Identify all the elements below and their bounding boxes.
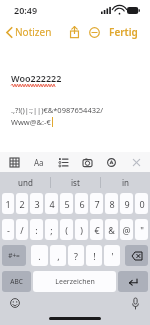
staticText: 3 — [34, 198, 40, 210]
staticText: ) — [80, 224, 83, 236]
button[interactable]: - — [2, 219, 14, 240]
button[interactable]: #+= — [2, 245, 26, 266]
staticText: und — [18, 177, 33, 188]
button[interactable]: 7 — [90, 193, 103, 214]
staticText: 0 — [139, 198, 145, 210]
button[interactable]: ( — [60, 219, 73, 240]
button[interactable]: Notizen — [0, 22, 58, 42]
staticText: / — [20, 224, 24, 236]
button[interactable]: " — [135, 219, 148, 240]
button[interactable]: Teilen — [64, 22, 84, 42]
button[interactable]: Markieren — [101, 152, 121, 172]
button[interactable]: Kamera — [77, 152, 97, 172]
button[interactable]: . — [31, 245, 48, 266]
staticText: in — [122, 177, 130, 188]
staticText: : — [35, 224, 38, 236]
button[interactable]: & — [105, 219, 118, 240]
button[interactable]: Woo222222 — [0, 44, 150, 152]
staticText: Aa — [34, 157, 44, 168]
button[interactable]: 0 — [135, 193, 148, 214]
button[interactable]: ist — [51, 172, 100, 193]
staticText: Fertig — [109, 25, 138, 39]
button[interactable]: 5 — [60, 193, 73, 214]
button[interactable]: , — [50, 245, 66, 266]
button[interactable]: Tabelle — [4, 152, 24, 172]
staticText: 5 — [64, 198, 70, 210]
button[interactable]: Schließen — [126, 152, 146, 172]
button[interactable]: Format — [29, 152, 49, 172]
staticText: € — [94, 224, 100, 236]
button[interactable]: @ — [120, 219, 133, 240]
button[interactable]: : — [30, 219, 43, 240]
button[interactable]: € — [90, 219, 103, 240]
staticText: .,?!()|:;||)€&*0987654432/ — [11, 105, 104, 115]
staticText: & — [108, 224, 115, 236]
staticText: ist — [71, 177, 80, 188]
button[interactable]: ! — [86, 245, 102, 266]
button[interactable]: 2 — [16, 193, 28, 214]
staticText: Notizen — [15, 25, 52, 39]
button[interactable]: Liste — [53, 152, 73, 172]
staticText: 9 — [124, 198, 130, 210]
button[interactable]: Diktieren — [127, 295, 143, 311]
staticText: 1 — [5, 198, 11, 210]
button[interactable]: in — [101, 172, 150, 193]
staticText: Woo222222 — [11, 72, 62, 84]
staticText: 2 — [19, 198, 25, 210]
staticText: ABC — [10, 277, 23, 286]
button[interactable]: Eingabe — [118, 271, 148, 292]
button[interactable]: Mehr — [84, 22, 104, 42]
staticText: 6 — [79, 198, 85, 210]
staticText: ( — [65, 224, 68, 236]
button[interactable]: 9 — [120, 193, 133, 214]
staticText: ! — [93, 250, 96, 262]
button[interactable]: ) — [75, 219, 88, 240]
button[interactable]: 8 — [105, 193, 118, 214]
button[interactable]: Leerzeichen — [33, 271, 116, 292]
staticText: Www@&:-€ — [11, 117, 51, 127]
button[interactable]: ABC — [2, 271, 31, 292]
staticText: @ — [122, 224, 131, 236]
button[interactable]: Emoji — [7, 295, 23, 311]
staticText: " — [140, 224, 144, 236]
staticText: - — [7, 224, 10, 236]
button[interactable]: Fertig — [104, 22, 143, 42]
staticText: 7 — [94, 198, 100, 210]
button[interactable]: 4 — [45, 193, 58, 214]
button[interactable]: / — [16, 219, 28, 240]
staticText: Leerzeichen — [55, 277, 95, 287]
staticText: 20:49 — [14, 4, 38, 16]
button[interactable]: und — [0, 172, 50, 193]
button[interactable]: ' — [104, 245, 120, 266]
button[interactable]: 1 — [2, 193, 14, 214]
button[interactable]: ; — [45, 219, 58, 240]
staticText: , — [57, 250, 60, 262]
staticText: . — [38, 250, 41, 262]
button[interactable]: 3 — [30, 193, 43, 214]
staticText: 8 — [109, 198, 115, 210]
staticText: ? — [74, 250, 78, 262]
staticText: ; — [50, 224, 53, 236]
staticText: 4 — [49, 198, 55, 210]
button[interactable]: 6 — [75, 193, 88, 214]
button[interactable]: Löschen — [125, 245, 148, 266]
button[interactable]: ? — [68, 245, 84, 266]
staticText: #+= — [8, 251, 20, 260]
staticText: ' — [111, 250, 114, 262]
